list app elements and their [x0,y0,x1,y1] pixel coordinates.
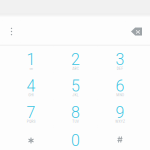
button[interactable]: Delete [125,21,147,41]
button[interactable]: 2 [53,46,97,72]
button[interactable]: Star [9,127,53,150]
staticText: JKL [72,93,79,97]
staticText: ∞ [29,66,32,70]
staticText: 5 [71,77,80,95]
button[interactable]: 0 [53,127,97,150]
staticText: TUV [72,119,79,123]
button[interactable]: 3 [98,46,142,72]
button[interactable]: 8 [53,99,97,125]
staticText: 1 [26,50,35,69]
staticText: MNO [116,93,124,97]
staticText: 7 [26,103,35,122]
button[interactable]: 1 [9,46,53,72]
staticText: GHI [28,93,34,97]
staticText: PQRS [27,119,35,123]
staticText: 9 [115,103,124,122]
staticText: 6 [115,77,124,95]
button[interactable]: 6 [98,73,142,99]
staticText: 2 [71,50,80,69]
button[interactable]: 7 [9,99,53,125]
button[interactable]: More options [2,20,20,42]
staticText: 0 [71,131,80,150]
button[interactable]: 4 [9,73,53,99]
button[interactable]: 9 [98,99,142,125]
staticText: ABC [72,66,79,70]
staticText: 4 [26,77,35,95]
staticText: 8 [71,103,80,122]
staticText: 3 [115,50,124,69]
staticText: DEF [117,66,123,70]
button[interactable]: 5 [53,73,97,99]
button[interactable]: Pound [98,126,142,150]
staticText: WXYZ [115,119,125,123]
